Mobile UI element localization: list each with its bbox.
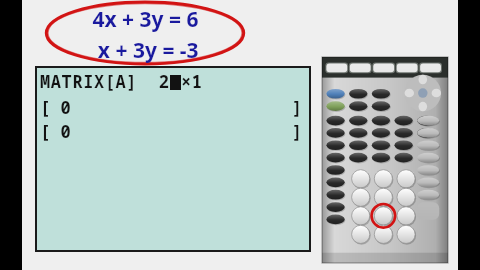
staticText: [ 0 [40, 120, 71, 143]
staticText: [ 0 [40, 96, 71, 119]
staticText: x + 3y = -3 [92, 36, 199, 65]
button[interactable]: 4x + 3y = 6 [40, 0, 250, 66]
button[interactable]: Graphing calculator [322, 57, 448, 263]
staticText: ] [292, 120, 303, 143]
staticText: MATRIX[A] 2 [40, 70, 170, 93]
staticText: ×1 [181, 70, 203, 93]
button[interactable]: MATRIX[A] 2 [37, 68, 309, 250]
staticText: ] [292, 96, 303, 119]
staticText: 4x + 3y = 6 [92, 5, 199, 34]
